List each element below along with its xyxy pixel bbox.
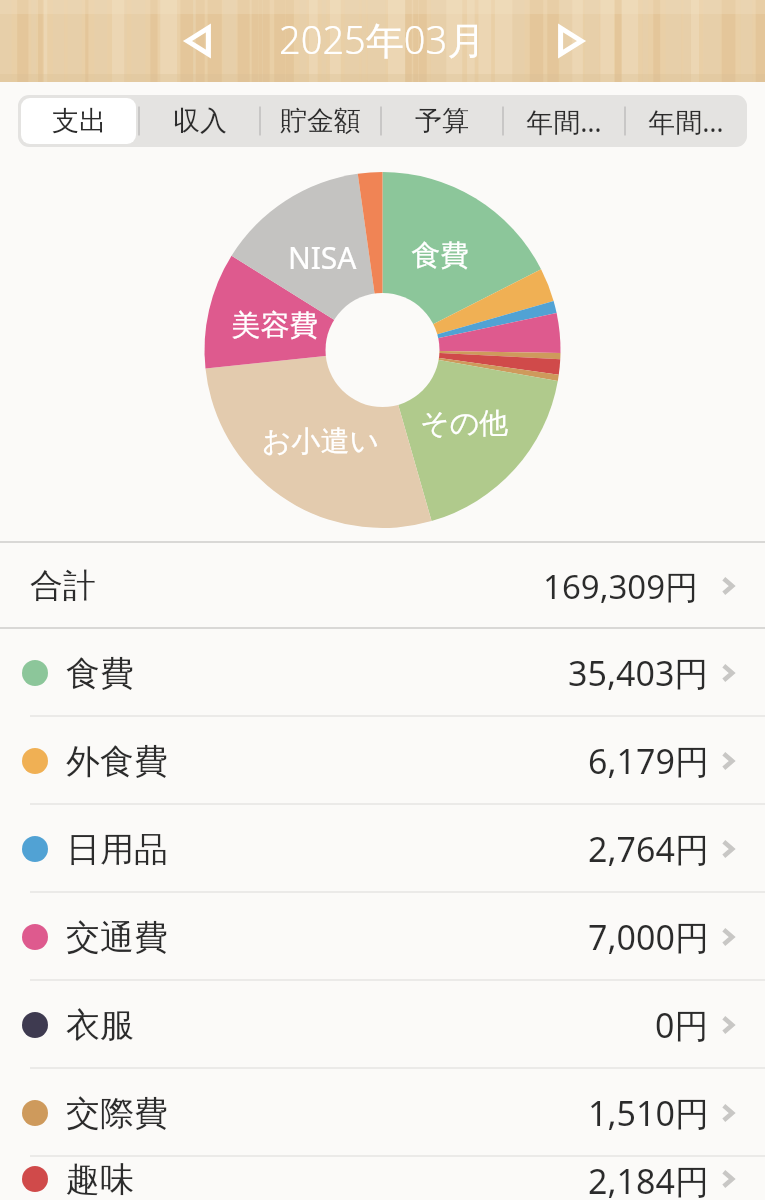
staticText: 合計 [30,565,96,607]
staticText: 6,179円 [588,738,709,784]
staticText: 日用品 [66,828,168,871]
staticText: 趣味 [66,1158,134,1200]
staticText: 年間… [648,103,724,140]
staticText: 年間… [526,103,602,140]
staticText: 1,510円 [588,1090,709,1136]
staticText: 外食費 [66,740,168,783]
staticText: 収入 [173,104,227,138]
staticText: 予算 [415,104,469,138]
button[interactable]: 年間… [503,95,625,147]
staticText: 35,403円 [568,650,709,696]
button[interactable]: Next month [545,15,597,67]
button[interactable]: 衣服 [0,982,765,1068]
staticText: 2025年03月 [279,13,486,65]
staticText: 2,184円 [588,1158,709,1200]
button[interactable]: 外食費 [0,718,765,804]
button[interactable]: 年間… [625,95,747,147]
staticText: 7,000円 [588,914,709,960]
staticText: 交通費 [66,916,168,959]
staticText: 0円 [655,1002,709,1048]
button[interactable]: 日用品 [0,806,765,892]
staticText: 169,309円 [543,564,699,609]
staticText: 交際費 [66,1092,168,1135]
button[interactable]: 合計 [0,544,765,628]
button[interactable]: 交際費 [0,1070,765,1156]
button[interactable]: 交通費 [0,894,765,980]
staticText: 衣服 [66,1004,134,1047]
staticText: 貯金額 [280,104,361,138]
button[interactable]: 収入 [139,95,260,147]
staticText: 食費 [66,652,134,695]
button[interactable]: 予算 [381,95,503,147]
button[interactable]: 貯金額 [260,95,381,147]
button[interactable]: Previous month [172,15,224,67]
button[interactable]: 趣味 [0,1158,765,1200]
button[interactable]: 支出 [21,98,136,144]
staticText: 支出 [52,104,106,138]
staticText: 2,764円 [588,826,709,872]
button[interactable]: 食費 [0,630,765,716]
